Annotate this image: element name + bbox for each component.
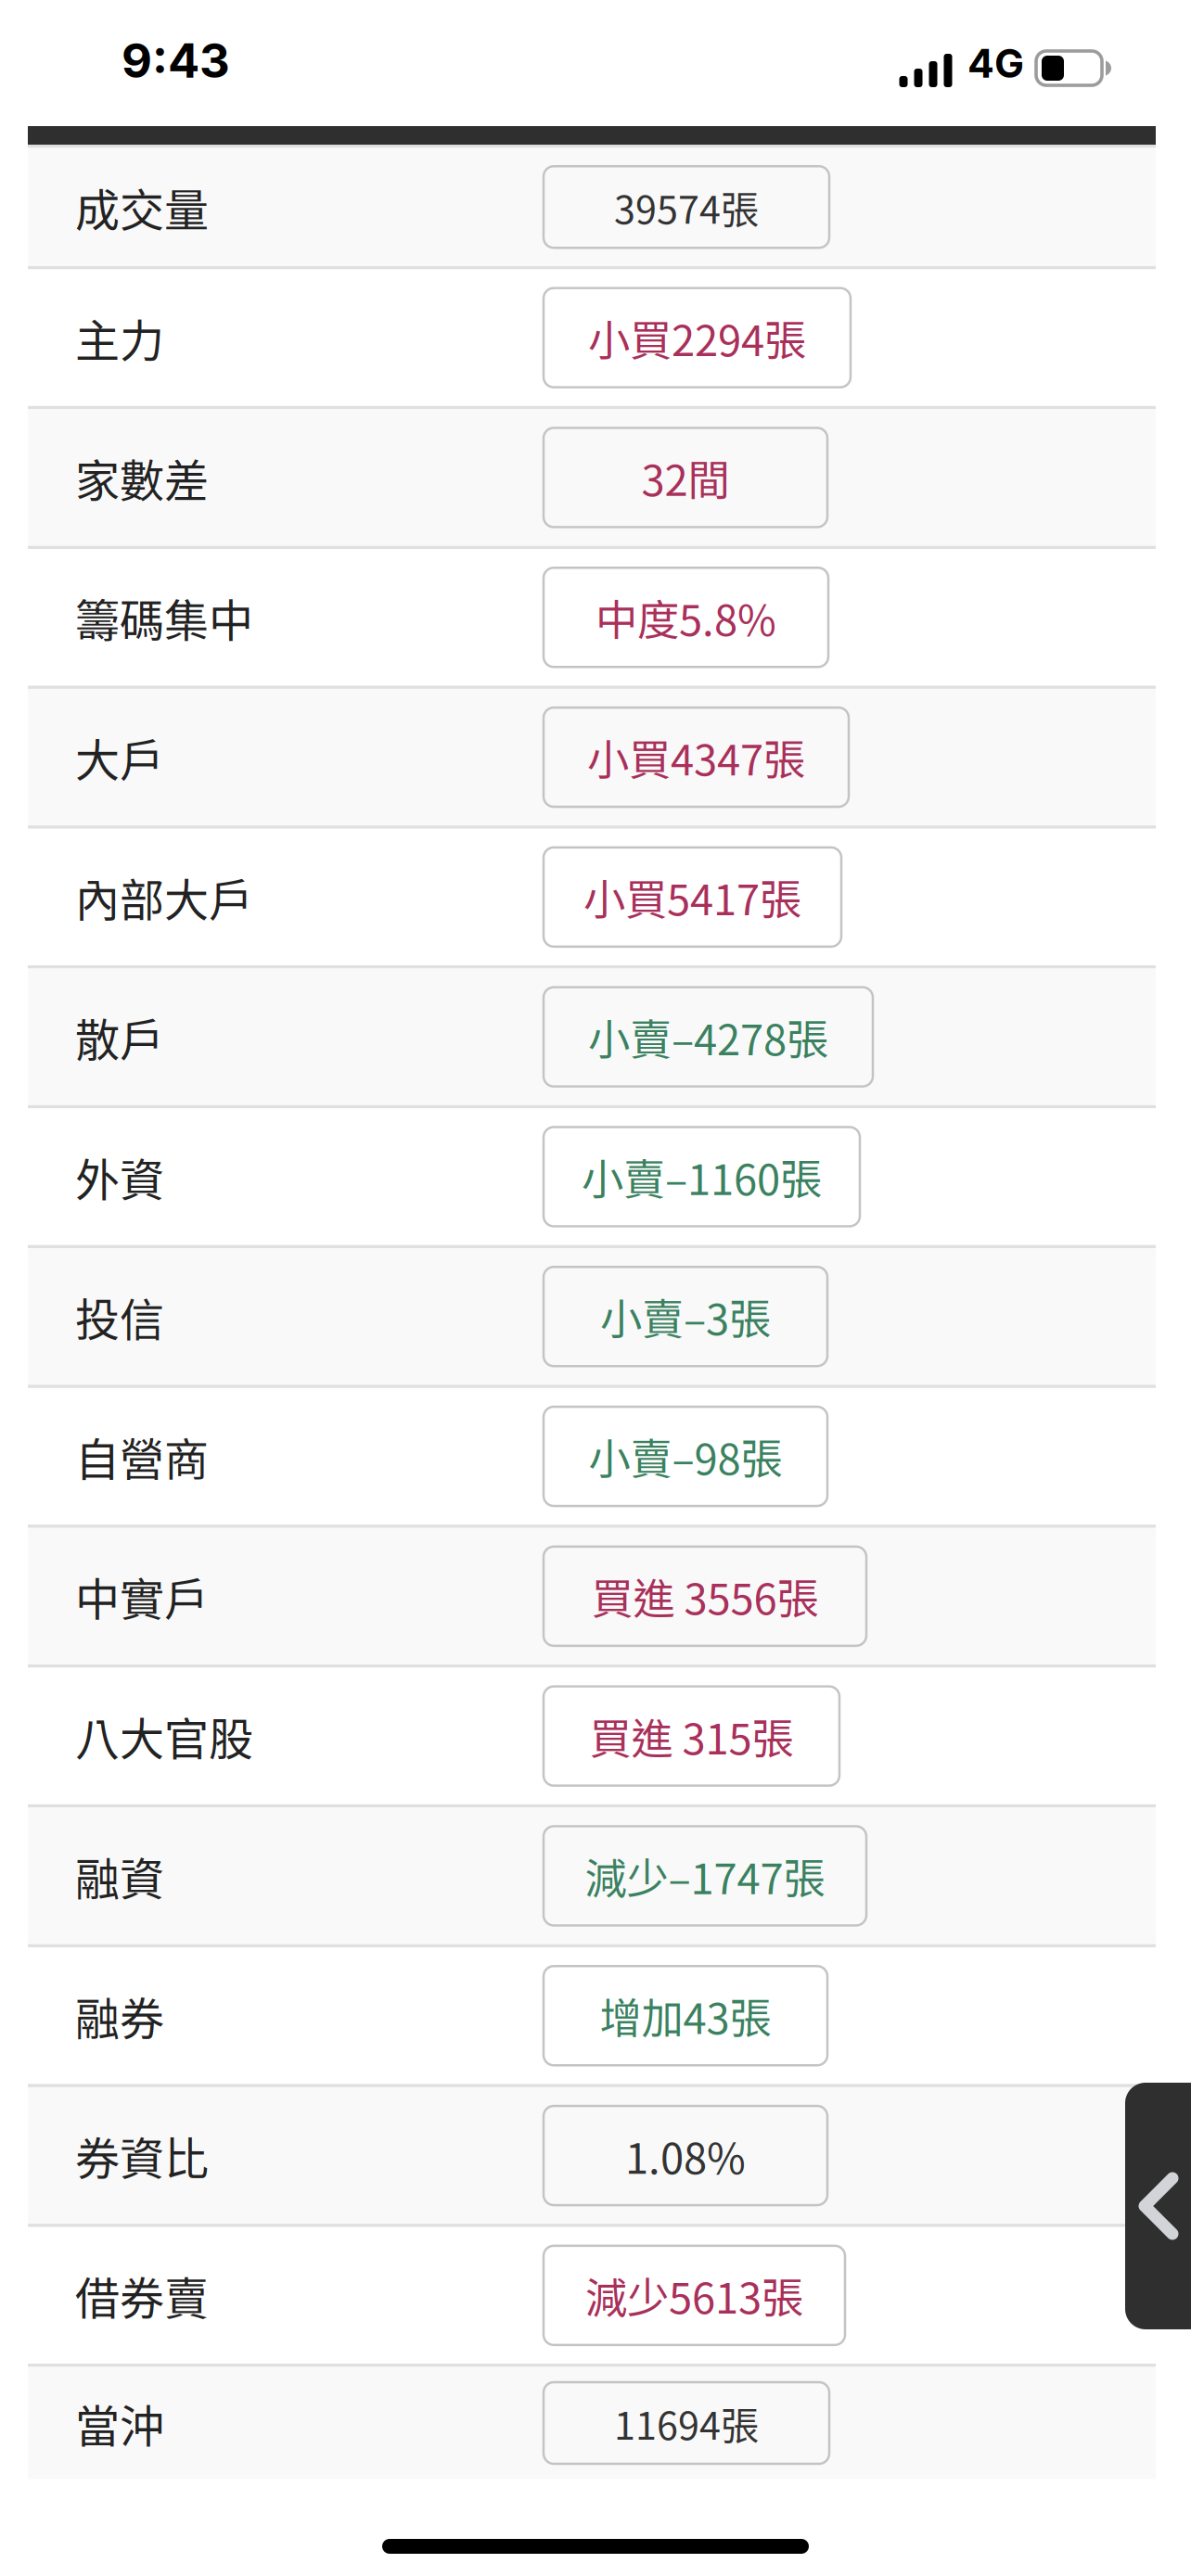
button[interactable]: 八大官股 — [28, 1668, 1156, 1804]
staticText: 小買2294張 — [588, 307, 806, 368]
button[interactable]: 券資比 — [28, 2087, 1156, 2224]
staticText: 4G — [967, 39, 1024, 87]
staticText: 主力 — [75, 305, 164, 370]
staticText: 9:43 — [122, 32, 230, 89]
staticText: 成交量 — [75, 175, 209, 239]
staticText: 小買5417張 — [583, 867, 801, 927]
button[interactable]: Open side panel — [1125, 2083, 1191, 2329]
staticText: 籌碼集中 — [75, 585, 253, 650]
staticText: 小賣–1160張 — [582, 1146, 822, 1207]
button[interactable]: 外資 — [28, 1108, 1156, 1245]
button[interactable]: 內部大戶 — [28, 829, 1156, 965]
button[interactable]: 中實戶 — [28, 1528, 1156, 1664]
staticText: 投信 — [75, 1284, 164, 1349]
staticText: 11694張 — [614, 2395, 759, 2451]
button[interactable]: 家數差 — [28, 409, 1156, 546]
button[interactable]: 大戶 — [28, 689, 1156, 825]
button[interactable]: 主力 — [28, 269, 1156, 406]
staticText: 融資 — [75, 1844, 164, 1908]
staticText: 家數差 — [75, 445, 209, 510]
staticText: 大戶 — [75, 725, 164, 789]
button[interactable]: 自營商 — [28, 1388, 1156, 1525]
staticText: 39574張 — [614, 179, 759, 235]
staticText: 減少–1747張 — [585, 1845, 825, 1906]
button[interactable]: 借券賣 — [28, 2227, 1156, 2364]
staticText: 小賣–3張 — [600, 1286, 771, 1347]
staticText: 中實戶 — [75, 1564, 209, 1628]
staticText: 融券 — [75, 1983, 164, 2048]
staticText: 自營商 — [75, 1424, 209, 1489]
staticText: 買進 3556張 — [591, 1566, 819, 1627]
staticText: 當沖 — [75, 2391, 164, 2455]
staticText: 減少5613張 — [585, 2265, 803, 2326]
staticText: 買進 315張 — [589, 1706, 794, 1766]
button[interactable]: 籌碼集中 — [28, 549, 1156, 686]
staticText: 1.08% — [625, 2125, 746, 2186]
button[interactable]: 融券 — [28, 1947, 1156, 2084]
staticText: 借券賣 — [75, 2263, 209, 2328]
button[interactable]: 散戶 — [28, 969, 1156, 1105]
button[interactable]: 成交量 — [28, 148, 1156, 266]
staticText: 八大官股 — [75, 1704, 253, 1768]
staticText: 小買4347張 — [587, 727, 805, 788]
staticText: 中度5.8% — [595, 587, 776, 648]
button[interactable]: 當沖 — [28, 2367, 1156, 2479]
button[interactable]: 融資 — [28, 1808, 1156, 1944]
staticText: 散戶 — [75, 1005, 164, 1069]
staticText: 增加43張 — [600, 1985, 771, 2046]
staticText: 小賣–4278張 — [588, 1006, 828, 1067]
staticText: 外資 — [75, 1144, 164, 1209]
staticText: 小賣–98張 — [589, 1426, 782, 1487]
staticText: 32間 — [641, 447, 730, 508]
staticText: 內部大戶 — [75, 865, 253, 929]
button[interactable]: 投信 — [28, 1248, 1156, 1385]
staticText: 券資比 — [75, 2123, 209, 2188]
